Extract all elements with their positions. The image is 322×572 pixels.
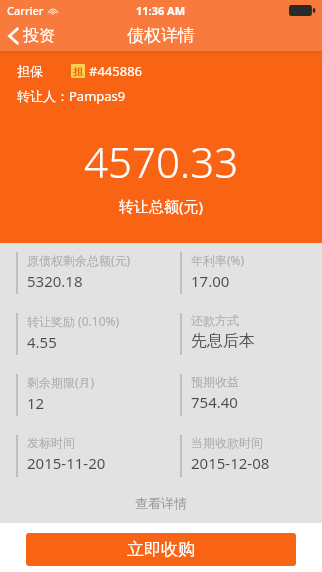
staticText: 2015-12-08: [191, 453, 270, 473]
staticText: 剩余期限(月): [27, 374, 95, 390]
staticText: 转让人：Pampas9: [17, 87, 126, 105]
staticText: #445886: [89, 62, 143, 80]
button[interactable]: 投资: [0, 20, 65, 51]
staticText: 转让总额(元): [119, 196, 204, 216]
staticText: 查看详情: [135, 495, 187, 511]
staticText: 11:36 AM: [136, 3, 186, 18]
staticText: 17.00: [191, 271, 230, 291]
staticText: 预期收益: [191, 374, 239, 389]
staticText: 12: [27, 393, 45, 413]
button[interactable]: 立即收购: [26, 533, 296, 566]
staticText: 4570.33: [84, 133, 239, 190]
staticText: 立即收购: [127, 539, 195, 560]
staticText: 5320.18: [27, 271, 83, 291]
staticText: 担保: [17, 63, 43, 79]
staticText: Carrier: [7, 3, 44, 18]
staticText: 年利率(%): [191, 252, 245, 268]
staticText: 还款方式: [191, 313, 239, 328]
staticText: 投资: [23, 26, 55, 46]
button[interactable]: 查看详情: [125, 492, 197, 514]
staticText: 当期收款时间: [191, 435, 263, 450]
staticText: 发标时间: [27, 435, 75, 450]
staticText: 2015-11-20: [27, 453, 106, 473]
staticText: 先息后本: [191, 331, 255, 351]
staticText: 担: [73, 65, 83, 78]
staticText: 原债权剩余总额(元): [27, 252, 131, 268]
staticText: 债权详情: [127, 25, 195, 46]
staticText: 754.40: [191, 392, 238, 412]
staticText: 4.55: [27, 332, 57, 352]
staticText: 转让奖励 (0.10%): [27, 313, 120, 329]
